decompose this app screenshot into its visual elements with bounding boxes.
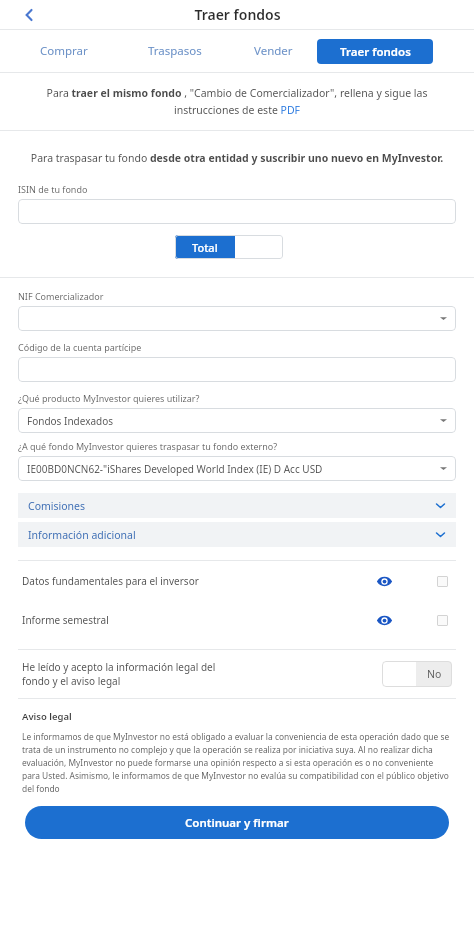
button[interactable]: Informe semestral (0, 600, 474, 639)
staticText: Informe semestral (22, 613, 109, 627)
staticText: ISIN de tu fondo (18, 183, 88, 195)
staticText: Comprar (40, 43, 88, 59)
button[interactable]: Información adicional (18, 522, 456, 547)
staticText: Traspasos (148, 43, 202, 59)
staticText: He leído y acepto la información legal d… (22, 660, 232, 688)
staticText: Continuar y firmar (185, 815, 289, 831)
staticText: Le informamos de que MyInvestor no está … (22, 731, 452, 794)
staticText: ¿Qué producto MyInvestor quieres utiliza… (18, 392, 200, 404)
button[interactable]: Datos fundamentales para el inversor (0, 561, 474, 600)
staticText: Total (192, 240, 218, 255)
staticText: Aviso legal (22, 710, 72, 723)
button[interactable]: Vender (252, 37, 295, 65)
button[interactable]: Continuar y firmar (25, 806, 449, 839)
button[interactable]: Ver documento: Informe semestral (373, 609, 395, 631)
staticText: Fondos Indexados (27, 414, 114, 428)
button[interactable]: Back (14, 0, 44, 29)
staticText: Comisiones (28, 499, 86, 513)
button[interactable]: Seleccionar: Informe semestral (432, 610, 452, 630)
staticText: No (427, 667, 442, 681)
button[interactable]: Ver documento: Datos fundamentales para … (373, 570, 395, 592)
staticText: Traer fondos (340, 44, 411, 60)
staticText: Vender (254, 43, 293, 59)
button[interactable]: Input field (18, 199, 456, 224)
button[interactable]: Dropdown (18, 408, 456, 433)
staticText: Código de la cuenta partícipe (18, 341, 142, 353)
button[interactable]: No (382, 661, 452, 687)
staticText: NIF Comercializador (18, 290, 104, 302)
button[interactable]: Dropdown (18, 306, 456, 331)
staticText: Información adicional (28, 528, 136, 542)
button[interactable]: Parcial (235, 235, 283, 259)
button[interactable]: Traspasos (146, 37, 204, 65)
staticText: ¿A qué fondo MyInvestor quieres traspasa… (18, 440, 278, 452)
staticText: Traer fondos (194, 5, 281, 24)
button[interactable]: Comprar (38, 37, 90, 65)
staticText: Datos fundamentales para el inversor (22, 574, 199, 588)
button[interactable]: Seleccionar: Datos fundamentales para el… (432, 571, 452, 591)
button[interactable]: Dropdown (18, 456, 456, 481)
button[interactable]: Input field (18, 357, 456, 382)
button[interactable]: Comisiones (18, 493, 456, 518)
button[interactable]: Total (175, 235, 235, 259)
staticText: IE00BD0NCN62-"iShares Developed World In… (27, 462, 323, 476)
staticText: Para traer el mismo fondo , "Cambio de C… (22, 86, 452, 117)
staticText: Para traspasar tu fondo desde otra entid… (26, 151, 448, 165)
button[interactable]: Traer fondos (317, 39, 433, 64)
